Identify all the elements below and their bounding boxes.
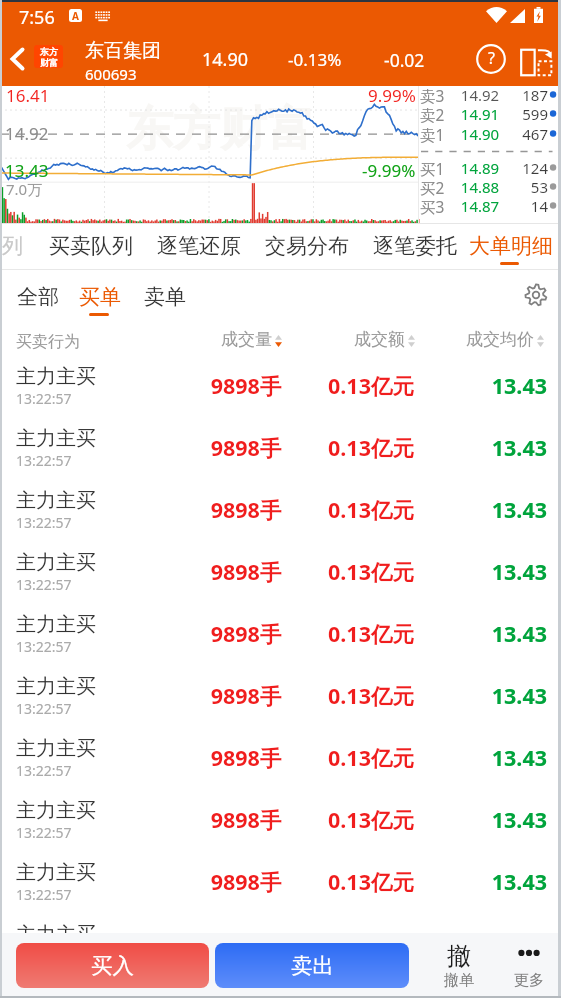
button[interactable]: 撤 (425, 933, 491, 998)
staticText: ? (488, 47, 495, 69)
staticText: 14 (514, 196, 548, 215)
button[interactable]: 卖3 (419, 85, 561, 104)
button[interactable]: 主力主买 (0, 543, 561, 605)
button[interactable]: 主力主买 (0, 667, 561, 729)
button[interactable]: 买1 (419, 158, 561, 177)
button[interactable]: 逐笔还原 (149, 224, 246, 269)
staticText: 交易分布 (265, 233, 349, 259)
staticText: 撤 (447, 941, 471, 971)
staticText: 16.41 (6, 84, 50, 107)
staticText: A (72, 9, 79, 22)
staticText: 9898手 (185, 867, 307, 896)
staticText: 0.13亿元 (310, 557, 432, 586)
staticText: 0.13亿元 (310, 681, 432, 710)
staticText: 主力主买 (16, 488, 96, 513)
staticText: 13.43 (425, 743, 547, 772)
staticText: 13.43 (425, 371, 547, 400)
staticText: 成交额 (354, 329, 405, 350)
staticText: 主力主买 (16, 364, 96, 389)
staticText: 13.43 (425, 929, 547, 947)
button[interactable]: 成交量 (221, 324, 282, 357)
staticText: 东百集团 (85, 39, 161, 63)
button[interactable]: Help (467, 32, 515, 86)
staticText: 主力主买 (16, 674, 96, 699)
staticText: 600693 (85, 64, 137, 84)
staticText: 13:22:57 (16, 885, 72, 904)
staticText: 7:56 (19, 5, 55, 30)
staticText: 9898手 (185, 557, 307, 586)
button[interactable]: 主力主买 (0, 419, 561, 481)
staticText: 13:22:57 (16, 637, 72, 656)
staticText: 9898手 (185, 371, 307, 400)
staticText: 买3 (420, 196, 446, 215)
staticText: 13:22:57 (16, 451, 72, 470)
staticText: 买入 (91, 952, 134, 979)
staticText: 13:22:57 (16, 389, 72, 408)
button[interactable]: 卖单 (133, 270, 190, 324)
staticText: 逐笔还原 (157, 233, 241, 259)
button[interactable]: 买入 (16, 943, 209, 988)
staticText: 124 (514, 158, 548, 177)
button[interactable]: 买3 (419, 196, 561, 215)
button[interactable]: 买单 (68, 270, 128, 324)
button[interactable]: 买卖队列 (41, 224, 138, 269)
staticText: 13.43 (425, 495, 547, 524)
button[interactable]: 成交额 (354, 324, 415, 357)
button[interactable]: 卖1 (419, 124, 561, 143)
button[interactable]: 主力主买 (0, 791, 561, 853)
staticText: 主力主买 (16, 612, 96, 637)
staticText: 主力主买 (16, 426, 96, 451)
button[interactable]: 主力主买 (0, 357, 561, 419)
button[interactable]: 成交均价 (466, 324, 544, 357)
button[interactable]: 主力主买 (0, 729, 561, 791)
staticText: 5993 (514, 104, 548, 123)
staticText: 14.88 (446, 177, 514, 196)
staticText: 14.92 (5, 122, 49, 145)
staticText: 东方 (40, 46, 58, 57)
staticText: 主力主买 (16, 860, 96, 885)
staticText: 逐笔委托 (373, 233, 457, 259)
button[interactable]: 主力主买 (0, 853, 561, 915)
button[interactable]: Split screen (513, 32, 561, 86)
staticText: 买卖行为 (16, 332, 80, 352)
staticText: 撤单 (444, 971, 474, 990)
staticText: -0.02 (384, 48, 425, 72)
button[interactable]: 卖出 (215, 943, 409, 988)
button[interactable]: 卖2 (419, 104, 561, 123)
staticText: 13:22:57 (16, 761, 72, 780)
button[interactable]: 主力主买 (0, 915, 561, 933)
button[interactable]: 更多 (495, 933, 561, 998)
staticText: 14.90 (446, 124, 514, 143)
button[interactable]: 主力主买 (0, 481, 561, 543)
button[interactable]: 全部 (6, 270, 63, 324)
staticText: 53 (514, 177, 548, 196)
staticText: 13.43 (425, 867, 547, 896)
button[interactable]: 大单明细 (461, 224, 561, 269)
staticText: 13.43 (425, 619, 547, 648)
staticText: 14.91 (446, 104, 514, 123)
staticText: 13.43 (425, 433, 547, 462)
staticText: 13.43 (425, 557, 547, 586)
staticText: 0.13亿元 (310, 805, 432, 834)
staticText: 主力主买 (16, 736, 96, 761)
staticText: 9898手 (185, 929, 307, 947)
button[interactable]: 逐笔委托 (365, 224, 462, 269)
button[interactable]: 交易分布 (257, 224, 354, 269)
staticText: 7.0万 (6, 179, 43, 199)
button[interactable]: 买2 (419, 177, 561, 196)
staticText: 更多 (514, 971, 544, 990)
staticText: 买卖队列 (49, 233, 133, 259)
staticText: 成交量 (221, 329, 272, 350)
button[interactable]: Back (0, 32, 34, 86)
button[interactable]: Settings (513, 270, 559, 324)
staticText: 4673 (514, 124, 548, 143)
staticText: 卖出 (291, 952, 334, 979)
staticText: 1877 (514, 85, 548, 104)
button[interactable]: 主力主买 (0, 605, 561, 667)
staticText: 14.89 (446, 158, 514, 177)
staticText: 13:22:57 (16, 513, 72, 532)
staticText: 全部 (17, 284, 59, 310)
staticText: 列 (2, 233, 23, 259)
staticText: 0.13亿元 (310, 371, 432, 400)
staticText: 9898手 (185, 743, 307, 772)
